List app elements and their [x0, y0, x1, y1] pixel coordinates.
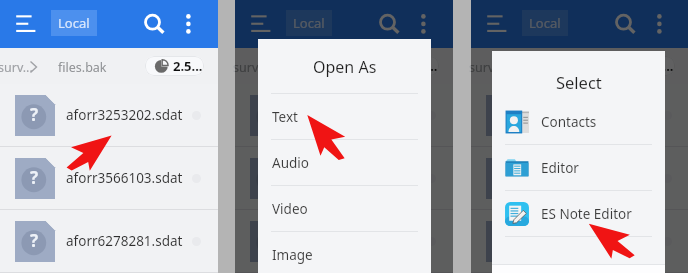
button[interactable]: ? [235, 147, 453, 209]
button[interactable]: 2.5... [380, 56, 439, 76]
staticText: aforr3253202.sdat [301, 106, 418, 124]
staticText: files.bak [58, 59, 107, 76]
button[interactable]: More options [413, 7, 435, 37]
staticText: Local [529, 14, 561, 32]
staticText: ? [265, 103, 274, 126]
staticText: aforr3566103.sdat [301, 169, 418, 187]
staticText: ? [30, 166, 39, 189]
staticText: surv... [469, 59, 504, 76]
staticText: ? [501, 166, 510, 189]
staticText: Image [272, 246, 313, 264]
button[interactable]: ? [471, 210, 688, 272]
button[interactable]: 2.5... [145, 56, 204, 76]
button[interactable]: Local [51, 10, 97, 36]
button[interactable]: ? [235, 84, 453, 146]
staticText: ? [265, 229, 274, 252]
button[interactable]: Editor [492, 145, 665, 190]
staticText: Open As [313, 56, 377, 78]
button[interactable]: Search [610, 7, 638, 35]
button[interactable]: ? [0, 147, 218, 209]
staticText: aforr6278281.sdat [537, 232, 654, 250]
staticText: aforr3566103.sdat [66, 169, 183, 187]
button[interactable]: Search [139, 7, 167, 35]
button[interactable]: Menu [12, 12, 40, 36]
button[interactable]: Menu [247, 12, 275, 36]
staticText: 2.5... [408, 57, 438, 75]
staticText: Editor [541, 159, 579, 177]
button[interactable]: ? [471, 147, 688, 209]
button[interactable]: ? [0, 84, 218, 146]
staticText: ? [30, 103, 39, 126]
button[interactable]: Menu [483, 12, 511, 36]
staticText: aforr3253202.sdat [537, 106, 654, 124]
staticText: ? [30, 229, 39, 252]
staticText: Local [58, 14, 90, 32]
button[interactable]: Image [258, 232, 431, 273]
staticText: ? [501, 103, 510, 126]
button[interactable]: Local [522, 10, 568, 36]
button[interactable]: Video [258, 186, 431, 231]
button[interactable]: Local [286, 10, 332, 36]
button[interactable]: Contacts [492, 99, 665, 144]
button[interactable]: Audio [258, 140, 431, 185]
staticText: Video [272, 200, 308, 218]
button[interactable]: Search [374, 7, 402, 35]
staticText: files.bak [293, 59, 342, 76]
button[interactable]: 2.5... [616, 56, 675, 76]
button[interactable]: Text [258, 94, 431, 139]
button[interactable]: ES Note Editor [492, 191, 665, 236]
staticText: Audio [272, 154, 309, 172]
staticText: Local [293, 14, 325, 32]
button[interactable]: ? [235, 210, 453, 272]
button[interactable]: ? [0, 210, 218, 272]
button[interactable]: ? [471, 84, 688, 146]
staticText: aforr6278281.sdat [66, 232, 183, 250]
staticText: aforr3566103.sdat [537, 169, 654, 187]
staticText: surv... [233, 59, 268, 76]
staticText: surv... [0, 59, 33, 76]
staticText: 2.5... [644, 57, 674, 75]
staticText: ? [265, 166, 274, 189]
button[interactable]: More options [178, 7, 200, 37]
staticText: ES Note Editor [541, 205, 632, 223]
staticText: 2.5... [173, 57, 203, 75]
staticText: Text [272, 108, 298, 126]
button[interactable]: More options [649, 7, 671, 37]
staticText: Contacts [541, 113, 597, 131]
staticText: aforr3253202.sdat [66, 106, 183, 124]
staticText: Select [556, 71, 602, 93]
